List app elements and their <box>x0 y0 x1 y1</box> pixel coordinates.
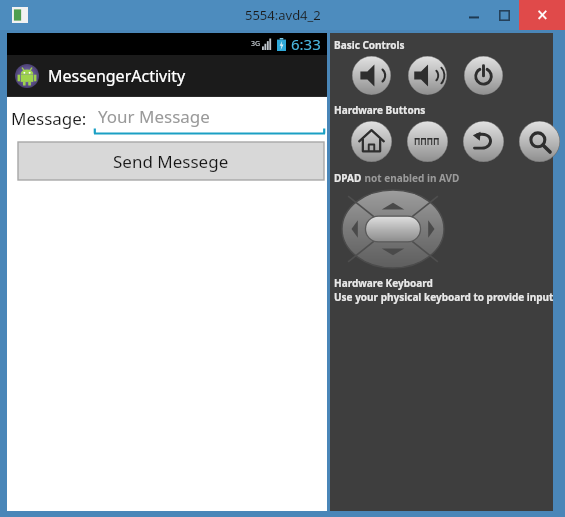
button[interactable]: Maximize <box>489 1 519 29</box>
staticText: Send Messege <box>113 150 229 173</box>
staticText: Hardware Keyboard <box>334 276 433 290</box>
button[interactable]: Minimize <box>459 1 489 29</box>
button[interactable]: Back <box>463 121 504 162</box>
staticText: 6:33 <box>291 34 321 54</box>
button[interactable]: Your Message <box>94 101 325 135</box>
button[interactable]: Search <box>519 121 560 162</box>
button[interactable]: D-pad <box>342 190 444 268</box>
button[interactable]: Menu <box>407 121 448 162</box>
staticText: Basic Controls <box>334 38 405 52</box>
button[interactable]: Send Messege <box>18 142 324 180</box>
button[interactable]: Volume up <box>408 56 447 95</box>
staticText: not enabled in AVD <box>362 171 460 185</box>
button[interactable]: Home <box>351 121 392 162</box>
staticText: 5554:avd4_2 <box>245 6 321 24</box>
button[interactable]: Volume down <box>352 56 391 95</box>
button[interactable]: Close <box>519 0 565 30</box>
staticText: Your Message <box>98 105 210 128</box>
staticText: × <box>537 2 548 28</box>
staticText: Use your physical keyboard to provide in… <box>334 290 554 304</box>
staticText: MessengerActivity <box>48 65 186 87</box>
staticText: Message: <box>11 107 87 130</box>
staticText: Hardware Buttons <box>334 103 426 117</box>
button[interactable]: Power <box>464 56 503 95</box>
staticText: 3G <box>251 39 261 49</box>
staticText: DPAD <box>334 171 362 185</box>
